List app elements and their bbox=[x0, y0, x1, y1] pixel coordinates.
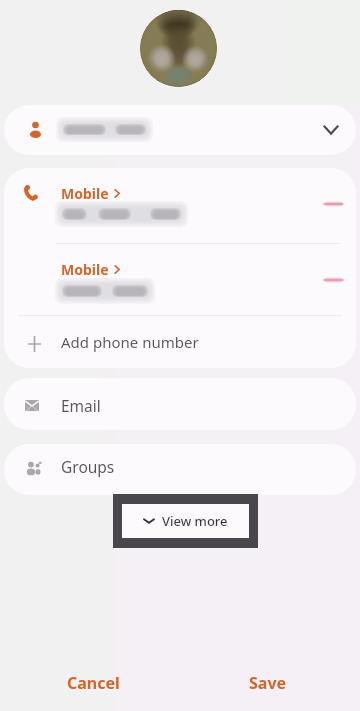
button[interactable]: Groups bbox=[4, 444, 356, 495]
staticText: View more bbox=[162, 512, 228, 530]
staticText: Mobile bbox=[61, 184, 109, 203]
button[interactable]: View more bbox=[122, 504, 249, 538]
button[interactable]: Remove phone number bbox=[315, 186, 351, 222]
button[interactable]: Mobile bbox=[4, 168, 356, 243]
staticText: Groups bbox=[61, 456, 115, 477]
button[interactable]: Save bbox=[208, 662, 328, 704]
staticText: Email bbox=[61, 395, 101, 416]
button[interactable]: Add phone number bbox=[4, 316, 356, 368]
button[interactable]: Cancel bbox=[33, 662, 153, 704]
staticText: Save bbox=[249, 672, 287, 694]
button[interactable]: Remove phone number bbox=[315, 262, 351, 298]
staticText: Mobile bbox=[61, 260, 109, 279]
other: Expand name bbox=[323, 122, 339, 138]
button[interactable]: Mobile bbox=[4, 244, 356, 315]
staticText: Cancel bbox=[67, 672, 120, 694]
staticText: Add phone number bbox=[61, 332, 199, 352]
button[interactable]: Expand name bbox=[4, 105, 356, 155]
button[interactable]: Profile photo bbox=[140, 10, 217, 87]
button[interactable]: Email bbox=[4, 378, 356, 430]
